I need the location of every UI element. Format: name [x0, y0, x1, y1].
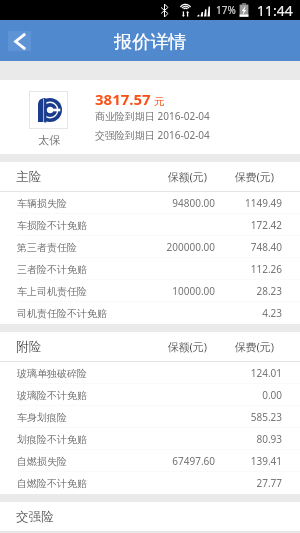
staticText: 1149.49 — [222, 196, 282, 210]
button[interactable]: 自燃损失险 — [0, 450, 300, 472]
staticText: 商业险到期日 2016-02-04 — [95, 109, 210, 123]
staticText: 0.00 — [222, 388, 282, 402]
button[interactable]: 三者险不计免赔 — [0, 258, 300, 280]
button[interactable]: 车损险不计免赔 — [0, 214, 300, 236]
staticText: 玻璃单独破碎险 — [17, 367, 87, 380]
button[interactable]: 划痕险不计免赔 — [0, 428, 300, 450]
staticText: 自燃损失险 — [17, 455, 67, 468]
staticText: 27.77 — [222, 476, 282, 490]
button[interactable]: 第三者责任险 — [0, 236, 300, 258]
staticText: 主险 — [16, 169, 41, 185]
staticText: 司机责任险不计免赔 — [17, 307, 107, 320]
button[interactable]: 车辆损失险 — [0, 192, 300, 214]
staticText: 车损险不计免赔 — [17, 219, 87, 232]
staticText: 200000.00 — [155, 240, 215, 254]
button[interactable]: 司机责任险不计免赔 — [0, 302, 300, 324]
button[interactable]: 自燃险不计免赔 — [0, 472, 300, 494]
staticText: 附险 — [16, 339, 41, 355]
staticText: 车辆损失险 — [17, 197, 67, 210]
staticText: 172.42 — [222, 218, 282, 232]
button[interactable]: 车身划痕险 — [0, 406, 300, 428]
staticText: 4.23 — [222, 306, 282, 320]
staticText: 3817.57 — [95, 89, 151, 109]
staticText: 第三者责任险 — [17, 241, 77, 254]
staticText: 11:44 — [257, 1, 293, 20]
staticText: 元 — [154, 95, 165, 108]
staticText: 车身划痕险 — [17, 411, 67, 424]
staticText: 太保 — [38, 133, 60, 147]
staticText: 保费(元) — [227, 339, 274, 354]
staticText: 748.40 — [222, 240, 282, 254]
staticText: 139.41 — [222, 454, 282, 468]
staticText: 车上司机责任险 — [17, 285, 87, 298]
staticText: 交强险到期日 2016-02-04 — [95, 128, 210, 142]
staticText: 三者险不计免赔 — [17, 263, 87, 276]
staticText: 报价详情 — [114, 30, 187, 53]
button[interactable]: 玻璃单独破碎险 — [0, 362, 300, 384]
staticText: 保额(元) — [160, 169, 207, 184]
staticText: 交强险 — [16, 509, 54, 525]
staticText: 划痕险不计免赔 — [17, 433, 87, 446]
staticText: 自燃险不计免赔 — [17, 477, 87, 490]
staticText: 124.01 — [222, 366, 282, 380]
staticText: 80.93 — [222, 432, 282, 446]
staticText: 112.26 — [222, 262, 282, 276]
staticText: 保额(元) — [160, 339, 207, 354]
staticText: 保费(元) — [227, 169, 274, 184]
staticText: 585.23 — [222, 410, 282, 424]
staticText: 28.23 — [222, 284, 282, 298]
staticText: 10000.00 — [155, 284, 215, 298]
button[interactable]: 玻璃险不计免赔 — [0, 384, 300, 406]
staticText: 94800.00 — [155, 196, 215, 210]
button[interactable]: Back — [8, 31, 31, 51]
button[interactable]: 车上司机责任险 — [0, 280, 300, 302]
staticText: 17% — [216, 3, 236, 17]
staticText: 67497.60 — [155, 454, 215, 468]
staticText: 玻璃险不计免赔 — [17, 389, 87, 402]
